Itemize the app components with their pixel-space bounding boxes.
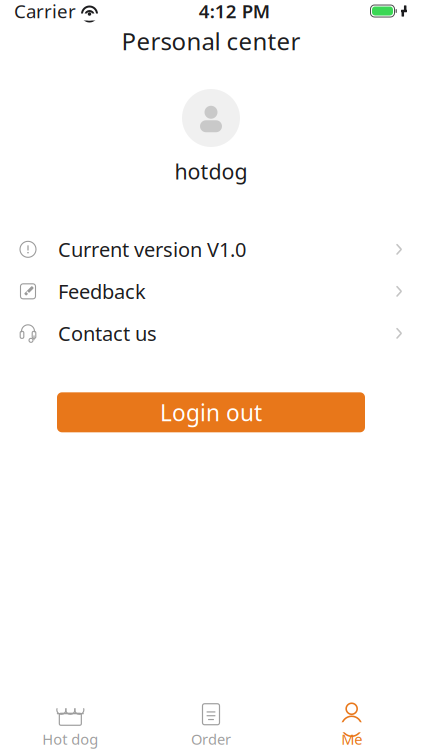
staticText: Order: [191, 729, 231, 749]
staticText: 4:12 PM: [199, 0, 270, 23]
staticText: Contact us: [58, 320, 157, 347]
staticText: Carrier: [14, 0, 76, 23]
staticText: Personal center: [121, 25, 300, 57]
staticText: Me: [341, 729, 362, 749]
staticText: Login out: [160, 397, 262, 427]
button[interactable]: Current version V1.0: [0, 228, 422, 270]
button[interactable]: Login out: [57, 392, 365, 432]
button[interactable]: Me: [281, 701, 422, 750]
button[interactable]: Hot dog: [0, 701, 141, 750]
button[interactable]: Contact us: [0, 312, 422, 354]
staticText: hotdog: [174, 157, 247, 185]
staticText: Current version V1.0: [58, 236, 246, 263]
staticText: Feedback: [58, 278, 146, 305]
staticText: Hot dog: [42, 729, 98, 749]
button[interactable]: Order: [141, 701, 281, 750]
button[interactable]: Feedback: [0, 270, 422, 312]
